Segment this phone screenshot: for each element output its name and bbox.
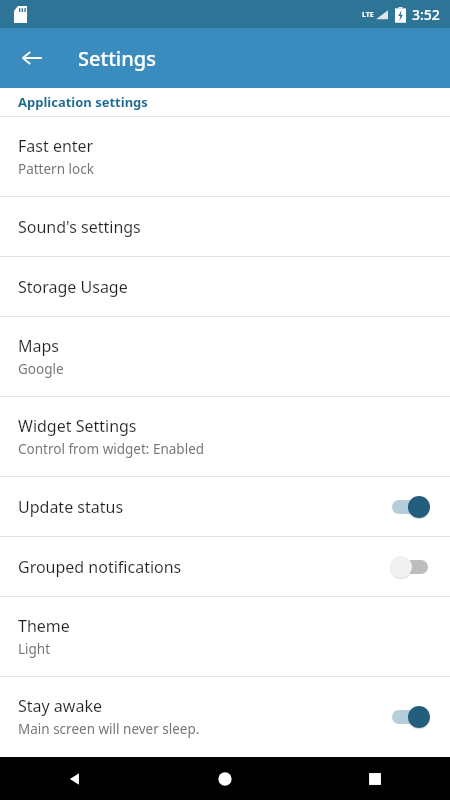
staticText: Sound's settings bbox=[18, 216, 141, 238]
button[interactable]: Back bbox=[0, 757, 150, 800]
button[interactable]: Home bbox=[150, 757, 300, 800]
staticText: Control from widget: Enabled bbox=[18, 440, 205, 458]
button[interactable]: Fast enter bbox=[0, 117, 450, 196]
staticText: Fast enter bbox=[18, 135, 94, 157]
staticText: Theme bbox=[18, 615, 70, 637]
button[interactable]: Toggle off bbox=[388, 550, 432, 584]
button[interactable]: Recent apps bbox=[300, 757, 450, 800]
button[interactable]: Widget Settings bbox=[0, 397, 450, 476]
button[interactable]: Theme bbox=[0, 597, 450, 676]
staticText: Storage Usage bbox=[18, 276, 128, 298]
button[interactable]: Toggle on bbox=[388, 700, 432, 734]
staticText: Maps bbox=[18, 335, 59, 357]
button[interactable]: Stay awake bbox=[0, 677, 450, 756]
button[interactable]: Storage Usage bbox=[0, 257, 450, 316]
button[interactable]: Sound's settings bbox=[0, 197, 450, 256]
button[interactable]: Grouped notifications bbox=[0, 537, 450, 596]
button[interactable]: Update status bbox=[0, 477, 450, 536]
button[interactable]: Back bbox=[12, 38, 52, 78]
staticText: Widget Settings bbox=[18, 415, 137, 437]
staticText: Stay awake bbox=[18, 695, 102, 717]
staticText: LTE bbox=[362, 10, 374, 20]
staticText: Google bbox=[18, 360, 64, 378]
staticText: 3:52 bbox=[412, 5, 440, 24]
staticText: Grouped notifications bbox=[18, 556, 182, 578]
staticText: Pattern lock bbox=[18, 160, 94, 178]
staticText: Update status bbox=[18, 496, 124, 518]
button[interactable]: Toggle on bbox=[388, 490, 432, 524]
staticText: Light bbox=[18, 640, 51, 658]
staticText: Settings bbox=[78, 45, 156, 72]
button[interactable]: Maps bbox=[0, 317, 450, 396]
staticText: Application settings bbox=[18, 93, 148, 111]
staticText: Main screen will never sleep. bbox=[18, 720, 200, 738]
